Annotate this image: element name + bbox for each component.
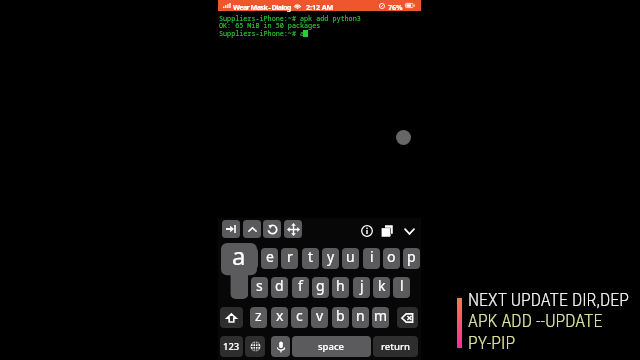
staticText: c — [296, 307, 303, 325]
staticText: 76% — [388, 2, 403, 12]
staticText: s — [256, 277, 263, 295]
button[interactable]: Hide keyboard — [400, 222, 418, 240]
staticText: Suppliers-iPhone:~# apk add python3 — [219, 14, 361, 23]
staticText: i — [370, 248, 374, 266]
button[interactable]: j — [353, 277, 370, 298]
staticText: j — [360, 277, 364, 295]
button[interactable]: p — [403, 248, 420, 269]
staticText: 123 — [223, 340, 240, 353]
button[interactable]: y — [322, 248, 339, 269]
button[interactable]: return — [373, 336, 418, 357]
button[interactable]: Next keyboard — [245, 336, 265, 357]
button[interactable]: Paste — [378, 222, 396, 240]
staticText: z — [255, 307, 262, 325]
staticText: a — [232, 239, 246, 267]
staticText: APK ADD --UPDATE — [468, 310, 603, 331]
button[interactable]: k — [373, 277, 390, 298]
staticText: Suppliers-iPhone:~# a — [219, 29, 305, 38]
button[interactable]: Undo — [263, 220, 281, 238]
button[interactable]: Info — [358, 222, 376, 240]
staticText: l — [400, 277, 404, 295]
staticText: d — [275, 277, 284, 295]
staticText: n — [356, 307, 365, 325]
button[interactable]: x — [271, 307, 288, 328]
staticText: f — [298, 277, 303, 295]
button[interactable]: Arrow keys — [284, 220, 302, 238]
staticText: q — [225, 248, 234, 266]
staticText: u — [346, 248, 355, 266]
staticText: h — [336, 277, 345, 295]
button[interactable]: g — [312, 277, 329, 298]
button[interactable]: AssistiveTouch — [396, 130, 411, 145]
staticText: return — [381, 340, 410, 353]
staticText: x — [276, 307, 284, 325]
button[interactable]: r — [281, 248, 298, 269]
button[interactable]: Control — [243, 220, 261, 238]
button[interactable]: Numbers — [220, 336, 243, 357]
staticText: r — [287, 248, 293, 266]
staticText: space — [318, 340, 345, 353]
button[interactable]: z — [250, 307, 267, 328]
staticText: v — [316, 307, 324, 325]
button[interactable]: s — [251, 277, 268, 298]
staticText: OK: 65 MiB in 50 packages — [219, 21, 321, 30]
button[interactable]: v — [311, 307, 328, 328]
staticText: o — [387, 248, 396, 266]
button[interactable]: space — [292, 336, 371, 357]
staticText: e — [266, 248, 274, 266]
button[interactable]: l — [393, 277, 410, 298]
button[interactable]: a — [231, 277, 248, 298]
button[interactable]: f — [292, 277, 309, 298]
button[interactable]: q — [221, 248, 238, 269]
button[interactable]: u — [342, 248, 359, 269]
button[interactable]: Backspace — [397, 307, 418, 328]
staticText: p — [407, 248, 416, 266]
button[interactable]: d — [271, 277, 288, 298]
button[interactable]: i — [363, 248, 380, 269]
button[interactable]: m — [372, 307, 389, 328]
staticText: b — [336, 307, 345, 325]
button[interactable]: e — [261, 248, 278, 269]
button[interactable]: Dictate — [271, 336, 290, 357]
button[interactable]: Tab — [222, 220, 240, 238]
button[interactable]: n — [352, 307, 369, 328]
button[interactable]: o — [383, 248, 400, 269]
staticText: y — [327, 248, 335, 266]
staticText: NEXT UPDATE DIR,DEP — [468, 289, 629, 310]
staticText: t — [308, 248, 314, 266]
staticText: Wear Mask - Dialog — [233, 2, 291, 12]
button[interactable]: t — [302, 248, 319, 269]
staticText: k — [378, 277, 386, 295]
button[interactable]: h — [332, 277, 349, 298]
staticText: m — [374, 307, 388, 325]
button[interactable]: b — [332, 307, 349, 328]
staticText: g — [316, 277, 325, 295]
staticText: PY-PIP — [468, 332, 516, 353]
button[interactable]: Shift — [220, 307, 243, 328]
button[interactable]: w — [241, 248, 258, 269]
staticText: 2:12 AM — [306, 2, 334, 12]
button[interactable]: c — [291, 307, 308, 328]
